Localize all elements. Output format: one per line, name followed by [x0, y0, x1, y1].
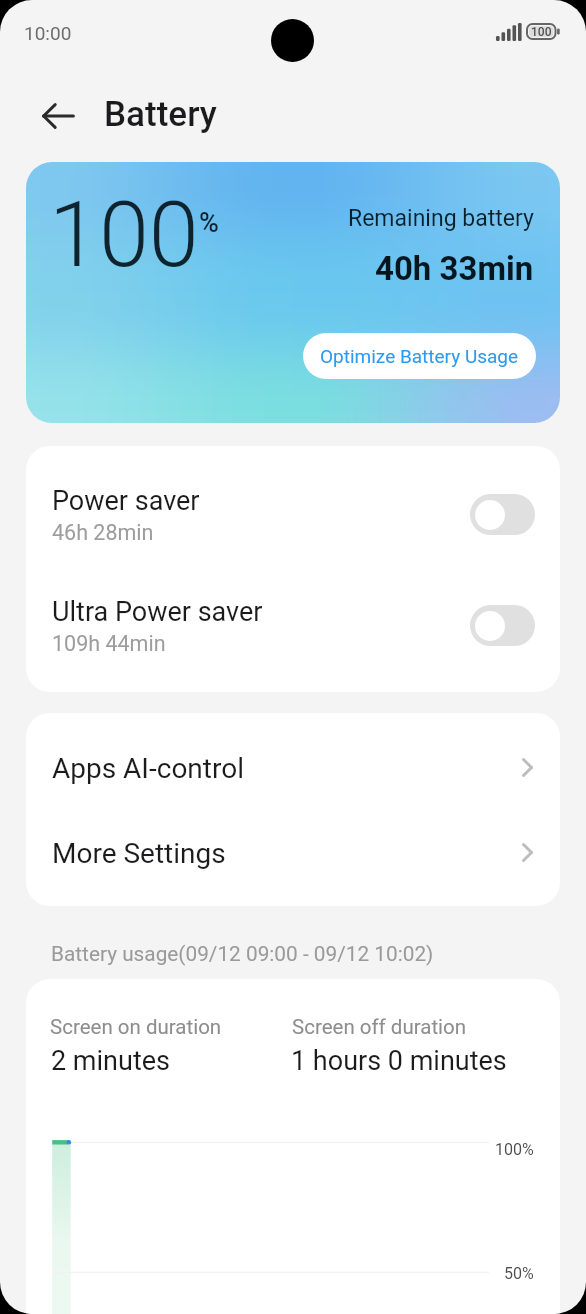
button[interactable]: Power saver — [470, 494, 535, 535]
staticText: More Settings — [52, 837, 226, 870]
staticText: Optimize Battery Usage — [320, 345, 519, 367]
staticText: % — [199, 207, 219, 239]
button[interactable]: Optimize Battery Usage — [303, 333, 536, 379]
button[interactable]: Back — [34, 92, 82, 140]
staticText: Screen off duration — [292, 1015, 467, 1039]
staticText: Remaining battery — [348, 205, 534, 232]
staticText: Screen on duration — [50, 1015, 222, 1039]
staticText: 50% — [504, 1264, 534, 1283]
staticText: 2 minutes — [51, 1045, 170, 1077]
button[interactable]: More Settings — [26, 827, 560, 875]
staticText: Power saver — [52, 485, 200, 517]
staticText: 109h 44min — [52, 631, 166, 656]
staticText: 100% — [495, 1140, 534, 1159]
staticText: 46h 28min — [52, 520, 154, 545]
staticText: 10:00 — [24, 22, 72, 44]
staticText: 100 — [531, 25, 552, 39]
staticText: Apps AI-control — [52, 752, 244, 785]
button[interactable]: Apps AI-control — [26, 742, 560, 790]
button[interactable]: Ultra Power saver — [470, 605, 535, 646]
staticText: Battery usage(09/12 09:00 - 09/12 10:02) — [51, 942, 434, 966]
staticText: 40h 33min — [375, 249, 534, 288]
staticText: Battery — [104, 94, 217, 135]
staticText: 1 hours 0 minutes — [291, 1045, 507, 1077]
staticText: 100 — [49, 183, 199, 288]
staticText: Ultra Power saver — [52, 596, 263, 628]
